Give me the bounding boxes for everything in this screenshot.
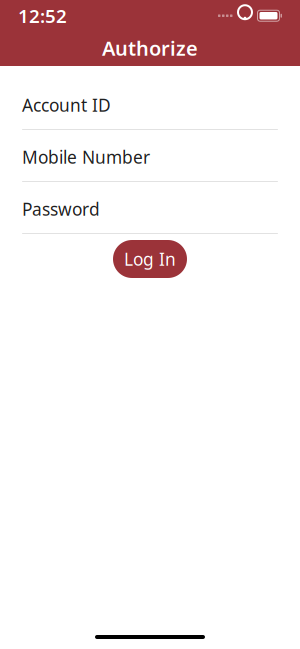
staticText: Account ID [22, 93, 111, 116]
button[interactable]: Log In [113, 240, 187, 278]
staticText: Authorize [102, 35, 198, 61]
staticText: Mobile Number [22, 145, 150, 168]
staticText: 12:52 [18, 3, 67, 28]
staticText: Log In [124, 247, 176, 270]
staticText: Password [22, 197, 100, 220]
